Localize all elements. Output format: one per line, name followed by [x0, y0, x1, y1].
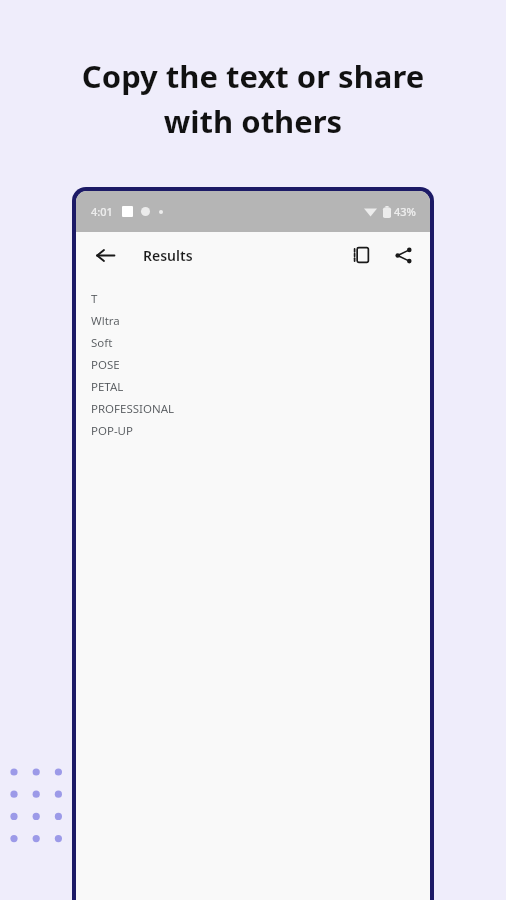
staticText: 43%: [394, 204, 416, 219]
staticText: Wltra: [91, 313, 120, 329]
button[interactable]: Soft: [91, 332, 430, 354]
staticText: Results: [143, 246, 193, 265]
staticText: PROFESSIONAL: [91, 401, 175, 417]
staticText: T: [91, 291, 98, 307]
button[interactable]: T: [91, 288, 430, 310]
button[interactable]: Wltra: [91, 310, 430, 332]
staticText: Soft: [91, 335, 113, 351]
button[interactable]: Copy text: [344, 238, 378, 272]
button[interactable]: PROFESSIONAL: [91, 398, 430, 420]
button[interactable]: Back: [88, 238, 122, 272]
button[interactable]: POSE: [91, 354, 430, 376]
staticText: 4:01: [91, 204, 113, 219]
staticText: POP-UP: [91, 423, 133, 439]
button[interactable]: Share: [386, 238, 420, 272]
button[interactable]: POP-UP: [91, 420, 430, 442]
staticText: PETAL: [91, 379, 124, 395]
staticText: POSE: [91, 357, 120, 373]
button[interactable]: PETAL: [91, 376, 430, 398]
staticText: Copy the text or share with others: [26, 55, 480, 142]
